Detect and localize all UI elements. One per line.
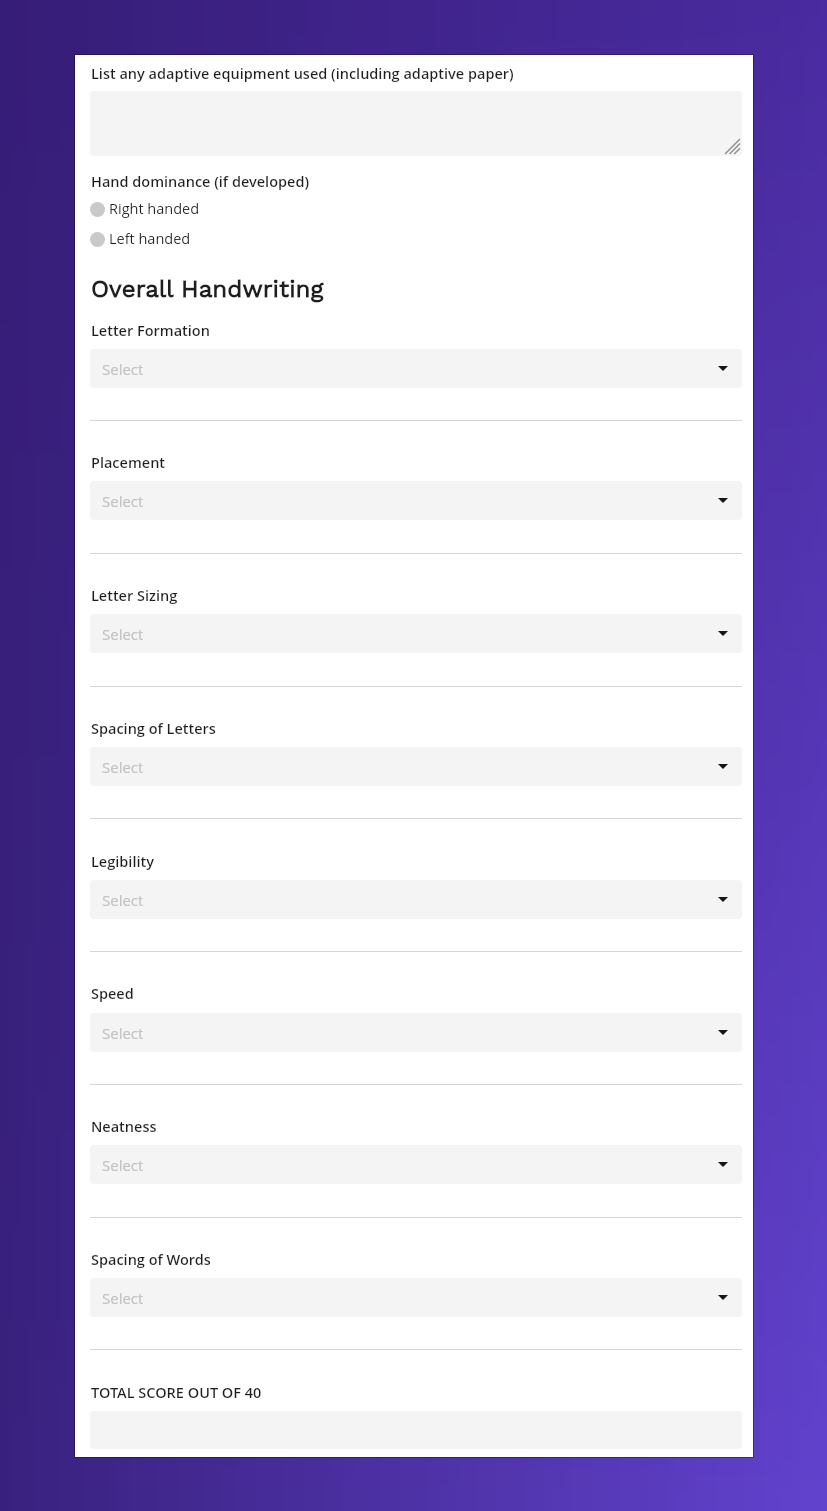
- staticText: Select: [102, 1288, 144, 1308]
- staticText: Placement: [91, 453, 166, 473]
- button[interactable]: Select an option: [90, 1278, 742, 1317]
- staticText: List any adaptive equipment used (includ…: [91, 64, 514, 84]
- staticText: TOTAL SCORE OUT OF 40: [91, 1383, 262, 1403]
- staticText: Letter Sizing: [91, 586, 178, 606]
- staticText: Left handed: [109, 229, 191, 249]
- staticText: Select: [102, 1023, 144, 1043]
- button[interactable]: Select an option: [90, 614, 742, 653]
- button[interactable]: Left handed: [90, 228, 191, 250]
- staticText: Letter Formation: [91, 321, 210, 341]
- button[interactable]: Select an option: [90, 880, 742, 919]
- staticText: Spacing of Letters: [91, 719, 216, 739]
- staticText: Neatness: [91, 1117, 157, 1137]
- staticText: Select: [102, 1155, 144, 1175]
- staticText: Select: [102, 757, 144, 777]
- button[interactable]: Right handed: [90, 198, 200, 220]
- staticText: Legibility: [91, 852, 154, 872]
- staticText: Right handed: [109, 199, 200, 219]
- staticText: Select: [102, 359, 144, 379]
- button[interactable]: Select an option: [90, 1145, 742, 1184]
- staticText: Select: [102, 491, 144, 511]
- button[interactable]: Select an option: [90, 349, 742, 388]
- button[interactable]: Adaptive equipment text field: [90, 91, 742, 156]
- staticText: Select: [102, 624, 144, 644]
- button[interactable]: Select an option: [90, 1013, 742, 1052]
- button[interactable]: Select an option: [90, 481, 742, 520]
- staticText: Overall Handwriting: [91, 274, 324, 302]
- button[interactable]: Select an option: [90, 747, 742, 786]
- staticText: Speed: [91, 984, 134, 1004]
- staticText: Hand dominance (if developed): [91, 172, 310, 192]
- staticText: Select: [102, 890, 144, 910]
- staticText: Spacing of Words: [91, 1250, 211, 1270]
